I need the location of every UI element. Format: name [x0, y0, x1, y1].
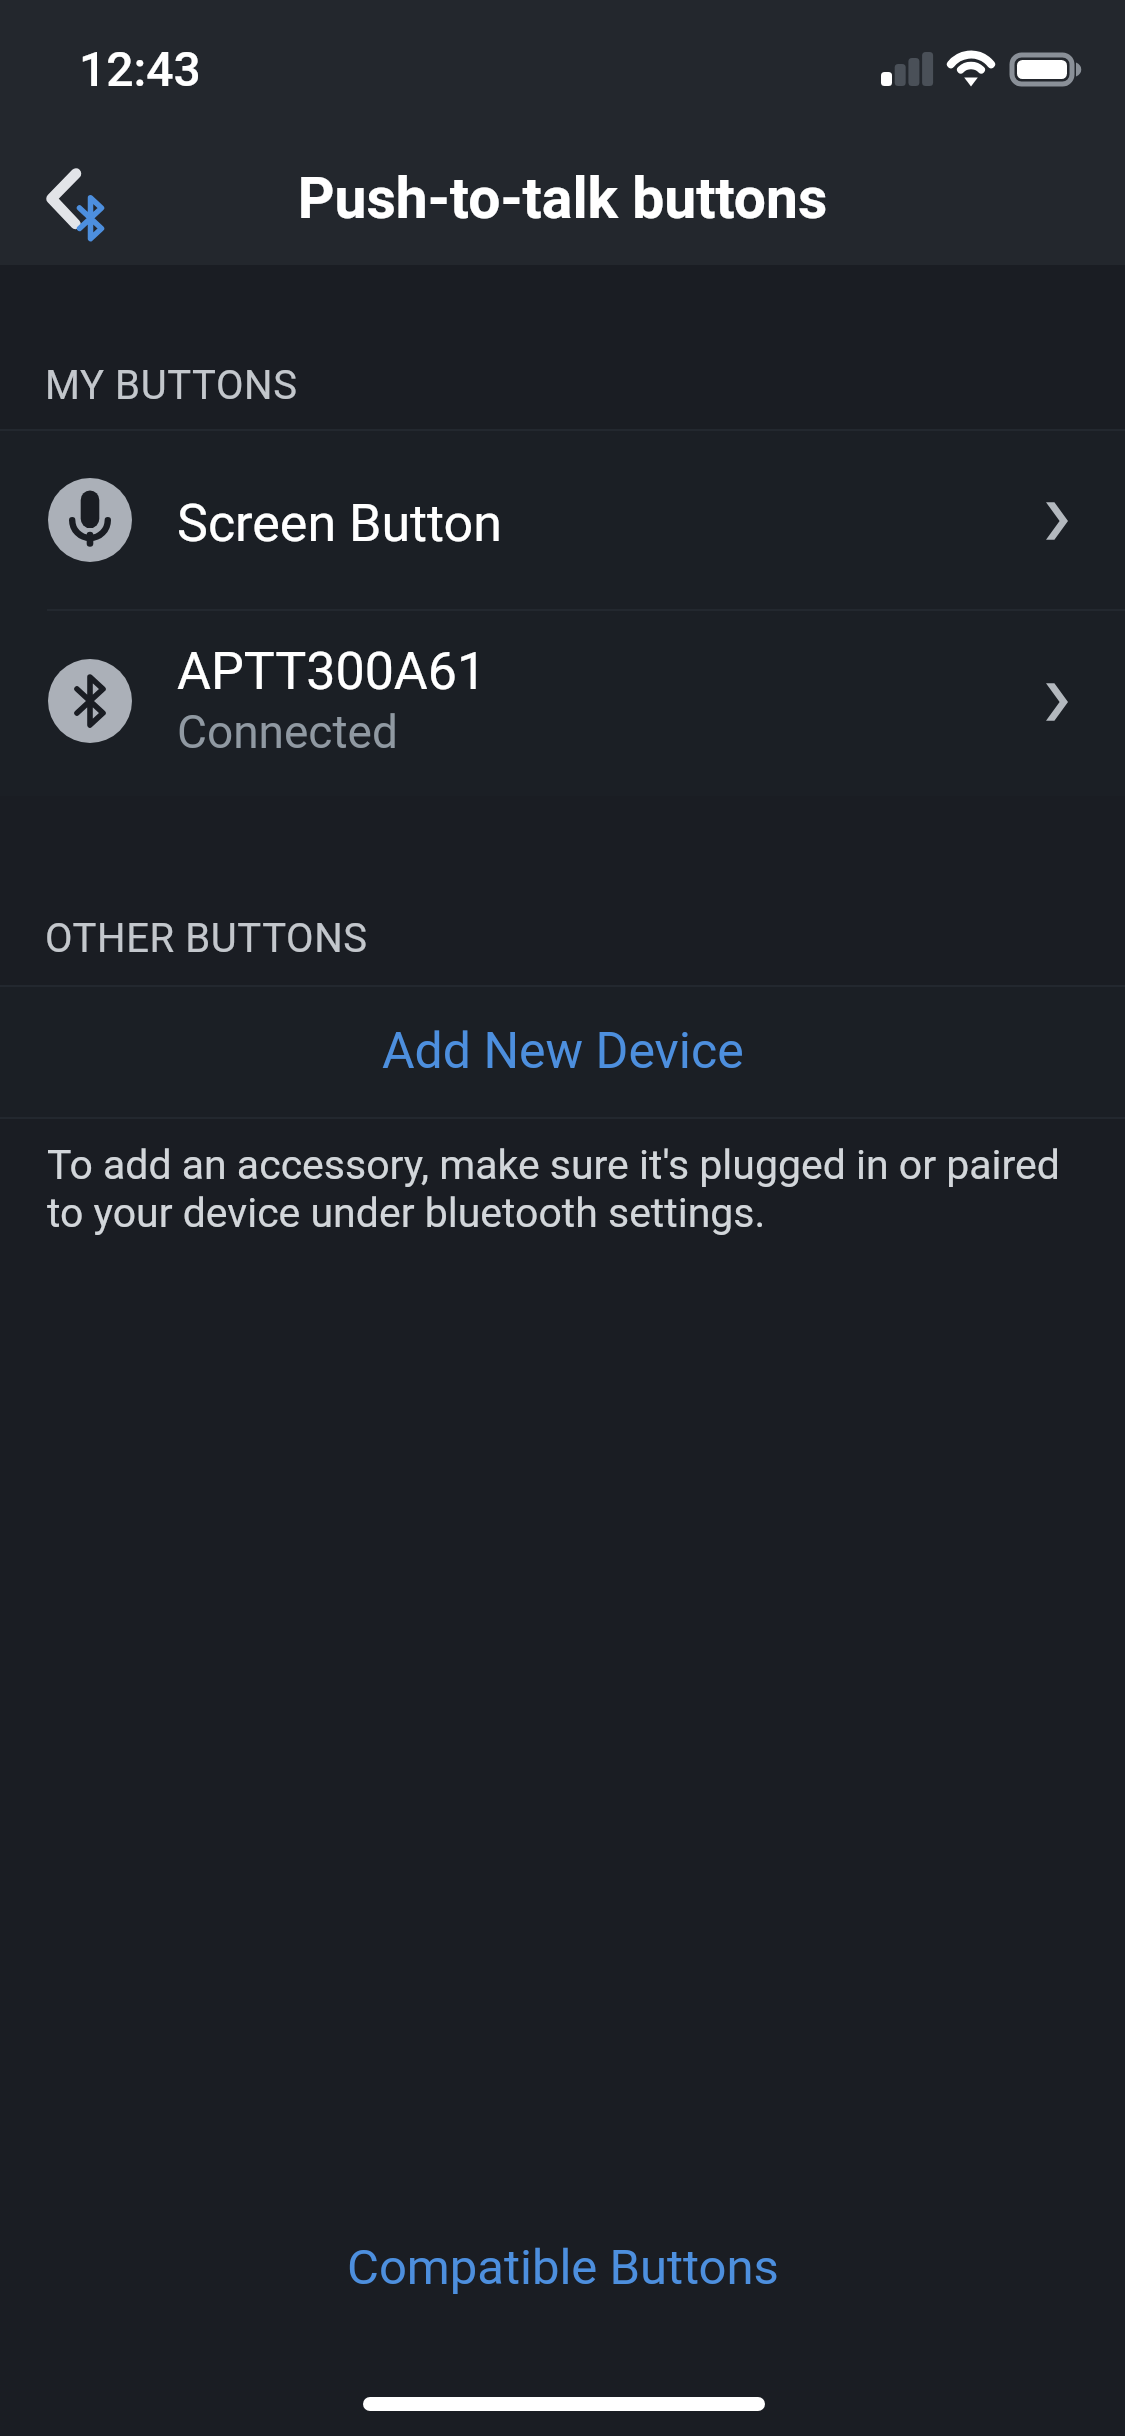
staticText: MY BUTTONS [45, 362, 298, 409]
button[interactable]: Add New Device [0, 985, 1125, 1117]
staticText: Screen Button [177, 493, 502, 554]
staticText: APTT300A61 [177, 641, 487, 702]
staticText: To add an accessory, make sure it's plug… [47, 1141, 1082, 1237]
staticText: Add New Device [382, 1022, 744, 1081]
button[interactable]: Back [0, 132, 190, 265]
button[interactable]: APTT300A61 [0, 611, 1125, 796]
button[interactable]: Screen Button [0, 431, 1125, 609]
staticText: Connected [177, 705, 398, 759]
staticText: Push-to-talk buttons [0, 165, 1125, 232]
staticText: 12:43 [79, 41, 201, 97]
staticText: Compatible Buttons [347, 2239, 779, 2296]
button[interactable]: Compatible Buttons [0, 2212, 1125, 2322]
staticText: OTHER BUTTONS [45, 915, 368, 962]
